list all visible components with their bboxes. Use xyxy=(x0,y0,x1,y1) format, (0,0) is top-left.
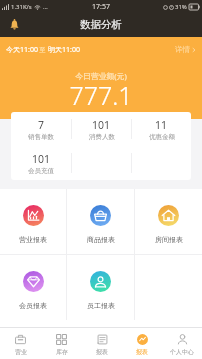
staticText: 会员报表 xyxy=(19,301,47,310)
staticText: 库存 xyxy=(56,348,68,356)
staticText: 会员充值 xyxy=(28,167,54,175)
staticText: … xyxy=(43,3,48,11)
button[interactable]: 个人中心 xyxy=(162,328,202,359)
staticText: 1.31K/s xyxy=(11,3,32,11)
staticText: 员工报表 xyxy=(87,301,115,310)
staticText: 17:57 xyxy=(92,2,110,12)
staticText: 营业 xyxy=(15,348,27,356)
button[interactable]: 会员报表 xyxy=(0,255,66,320)
button[interactable]: 101 xyxy=(72,112,131,146)
button[interactable]: 详情 xyxy=(175,45,196,54)
staticText: 明天11:00 xyxy=(48,45,80,55)
button[interactable]: 房间报表 xyxy=(135,189,202,254)
staticText: 消费人数 xyxy=(89,133,115,141)
button[interactable]: 库存 xyxy=(41,328,82,359)
staticText: 11 xyxy=(155,118,168,132)
staticText: 777.1 xyxy=(69,78,133,112)
button[interactable]: 11 xyxy=(132,112,191,146)
staticText: 101 xyxy=(32,152,51,166)
staticText: 报表 xyxy=(136,348,148,356)
staticText: 营业报表 xyxy=(19,235,47,244)
staticText: 至 xyxy=(38,46,48,54)
staticText: 31% xyxy=(175,3,187,11)
button[interactable]: 营业 xyxy=(0,328,41,359)
staticText: 7 xyxy=(38,118,45,132)
staticText: 优惠金额 xyxy=(149,133,175,141)
staticText: 详情 xyxy=(175,45,190,54)
button[interactable]: 今天11:00 xyxy=(6,45,80,55)
staticText: 销售单数 xyxy=(28,133,54,141)
staticText: 房间报表 xyxy=(155,235,183,244)
button[interactable]: 员工报表 xyxy=(67,255,134,320)
staticText: 报表 xyxy=(96,348,108,356)
button[interactable]: 7 xyxy=(11,112,71,146)
button[interactable]: Notifications xyxy=(4,14,24,34)
staticText: 个人中心 xyxy=(170,348,194,356)
staticText: 数据分析 xyxy=(80,18,122,31)
button[interactable]: 营业报表 xyxy=(0,189,66,254)
button[interactable]: 商品报表 xyxy=(67,189,134,254)
staticText: 101 xyxy=(92,118,111,132)
button[interactable]: 报表 xyxy=(122,328,162,359)
staticText: 今日营业额(元) xyxy=(75,71,127,82)
button[interactable]: 101 xyxy=(11,146,71,180)
button[interactable]: 报表 xyxy=(82,328,122,359)
staticText: 商品报表 xyxy=(87,235,115,244)
staticText: 今天11:00 xyxy=(6,45,38,55)
